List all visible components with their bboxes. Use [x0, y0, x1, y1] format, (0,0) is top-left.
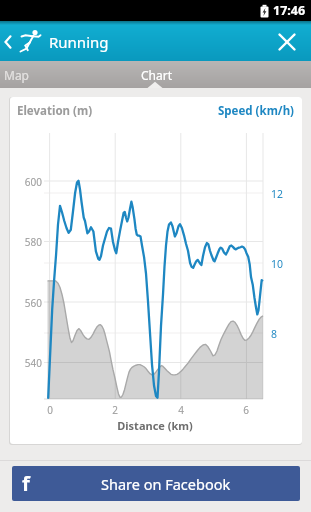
staticText: 540 [14, 356, 42, 370]
staticText: 4 [171, 403, 191, 417]
staticText: 8 [271, 327, 278, 341]
staticText: 6 [236, 403, 256, 417]
staticText: 0 [40, 403, 60, 417]
staticText: Map [4, 67, 29, 83]
staticText: Elevation (m) [17, 103, 93, 119]
staticText: 2 [105, 403, 125, 417]
button[interactable] [270, 25, 303, 58]
staticText: 600 [14, 175, 42, 189]
staticText: Distance (km) [105, 418, 205, 433]
button[interactable]: Chart [115, 61, 195, 88]
button[interactable]: Map [0, 61, 80, 88]
staticText: Speed (km/h) [214, 103, 294, 119]
staticText: 580 [14, 235, 42, 249]
staticText: f [22, 470, 30, 497]
staticText: Chart [141, 67, 173, 83]
staticText: 10 [271, 257, 284, 271]
staticText: Share on Facebook [101, 474, 231, 494]
button[interactable]: Share on Facebook [12, 466, 300, 501]
staticText: 17:46 [273, 2, 306, 19]
staticText: 560 [14, 296, 42, 310]
button[interactable] [0, 21, 48, 61]
staticText: 12 [271, 187, 284, 201]
staticText: Running [49, 32, 109, 52]
